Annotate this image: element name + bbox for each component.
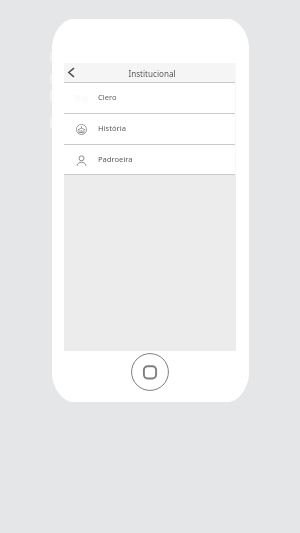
staticText: Padroeira xyxy=(98,154,133,164)
button[interactable]: Clero xyxy=(64,83,236,113)
button[interactable]: Back xyxy=(64,63,78,82)
button[interactable]: Home xyxy=(131,353,169,391)
staticText: Clero xyxy=(98,92,117,102)
button[interactable]: História xyxy=(64,114,236,144)
staticText: História xyxy=(98,123,126,133)
button[interactable]: Padroeira xyxy=(64,145,236,174)
staticText: Institucional xyxy=(128,68,176,79)
